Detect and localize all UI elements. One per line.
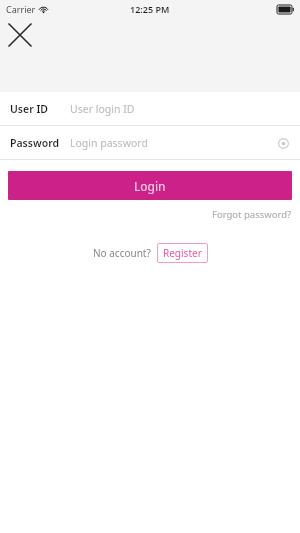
- staticText: Login: [134, 178, 166, 194]
- staticText: 12:25 PM: [130, 3, 170, 15]
- button[interactable]: Password: [0, 126, 300, 159]
- button[interactable]: Login: [8, 171, 292, 200]
- button[interactable]: Forgot password?: [212, 208, 292, 221]
- staticText: Login password: [70, 136, 148, 150]
- staticText: Password: [10, 136, 60, 150]
- button[interactable]: Close: [6, 21, 34, 49]
- staticText: User ID: [10, 102, 49, 116]
- button[interactable]: Show password: [273, 133, 293, 153]
- staticText: Carrier: [6, 3, 36, 15]
- staticText: No account?: [93, 246, 151, 260]
- staticText: Register: [163, 246, 202, 260]
- button[interactable]: User ID: [0, 92, 300, 125]
- staticText: User login ID: [70, 102, 135, 116]
- staticText: Forgot password?: [212, 208, 292, 221]
- button[interactable]: Register: [157, 243, 208, 263]
